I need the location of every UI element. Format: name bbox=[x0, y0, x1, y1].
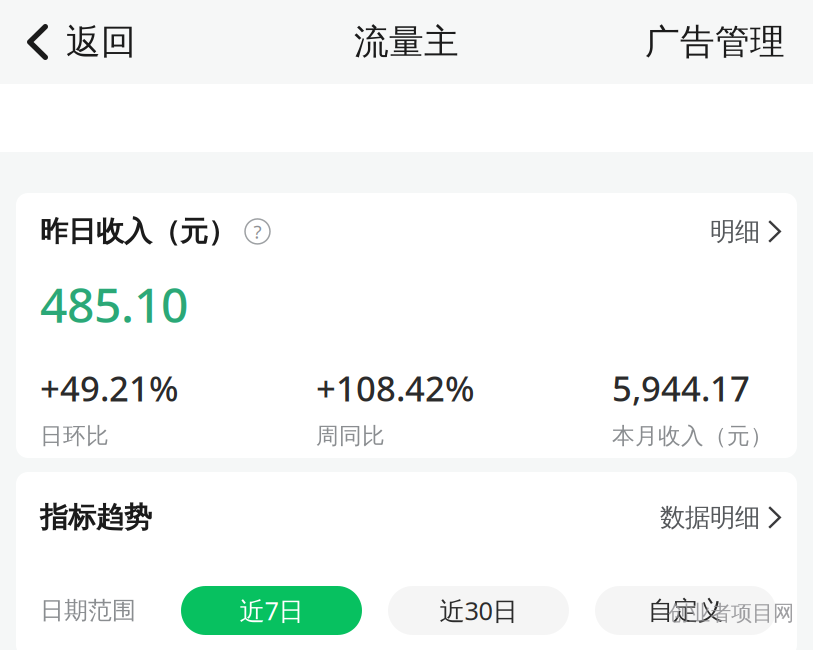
staticText: 返回 bbox=[66, 21, 136, 63]
button[interactable]: 近30日 bbox=[388, 586, 569, 635]
button[interactable]: 近7日 bbox=[181, 586, 362, 635]
staticText: +108.42% bbox=[316, 365, 475, 411]
staticText: ? bbox=[253, 219, 261, 244]
staticText: 数据明细 bbox=[660, 502, 760, 533]
button[interactable]: 广告管理 bbox=[627, 0, 813, 84]
staticText: 近30日 bbox=[439, 594, 517, 627]
staticText: 本月收入（元） bbox=[612, 422, 773, 450]
button[interactable]: 返回 bbox=[0, 0, 154, 84]
staticText: 明细 bbox=[710, 216, 760, 247]
staticText: 485.10 bbox=[40, 272, 188, 336]
staticText: 周同比 bbox=[316, 422, 385, 450]
staticText: 流量主 bbox=[354, 21, 459, 63]
button[interactable]: 自定义 bbox=[595, 586, 776, 635]
staticText: +49.21% bbox=[40, 365, 179, 411]
staticText: 指标趋势 bbox=[40, 500, 152, 535]
staticText: 日环比 bbox=[40, 422, 109, 450]
button[interactable]: 明细 bbox=[692, 210, 781, 253]
staticText: 昨日收入（元） bbox=[40, 214, 236, 249]
staticText: 近7日 bbox=[239, 594, 303, 627]
staticText: 创业者项目网 bbox=[668, 600, 794, 626]
button[interactable]: 数据明细 bbox=[642, 496, 781, 539]
staticText: 广告管理 bbox=[645, 21, 785, 63]
staticText: 5,944.17 bbox=[612, 365, 750, 411]
staticText: 自定义 bbox=[648, 595, 723, 626]
staticText: 日期范围 bbox=[40, 596, 136, 625]
